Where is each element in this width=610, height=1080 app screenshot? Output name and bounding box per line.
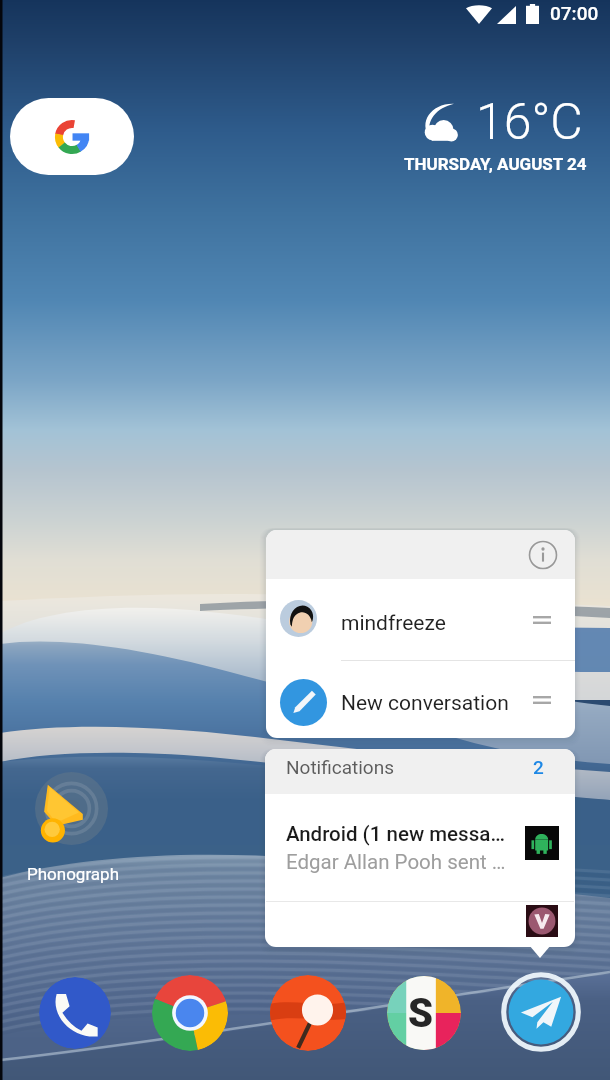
button[interactable]: Google Search <box>10 98 134 175</box>
staticText: Phonograph <box>27 864 119 884</box>
staticText: 07:00 <box>550 2 599 24</box>
button[interactable]: App info <box>528 540 558 570</box>
staticText: New conversation <box>341 691 509 716</box>
staticText: S <box>408 990 434 1037</box>
button[interactable]: New conversation <box>266 661 575 738</box>
button[interactable]: Weather <box>400 98 590 178</box>
button[interactable] <box>265 902 575 947</box>
button[interactable]: Telegram <box>500 971 582 1053</box>
button[interactable]: Music <box>270 975 346 1051</box>
button[interactable]: Slack <box>387 976 461 1050</box>
button[interactable]: mindfreeze <box>266 579 575 660</box>
staticText: THURSDAY, AUGUST 24 <box>404 154 587 174</box>
button[interactable]: Notifications <box>265 749 575 794</box>
staticText: 16°C <box>476 93 583 152</box>
button[interactable]: Phone <box>39 977 111 1049</box>
button[interactable]: Phonograph <box>10 766 135 891</box>
staticText: Notifications <box>286 756 395 778</box>
staticText: Android (1 new messa… <box>286 822 505 846</box>
staticText: Edgar Allan Pooh sent … <box>286 850 506 874</box>
button[interactable]: Android (1 new messa… <box>265 794 575 901</box>
button[interactable]: Chrome <box>152 975 228 1051</box>
staticText: mindfreeze <box>341 611 446 636</box>
staticText: 2 <box>533 756 544 778</box>
